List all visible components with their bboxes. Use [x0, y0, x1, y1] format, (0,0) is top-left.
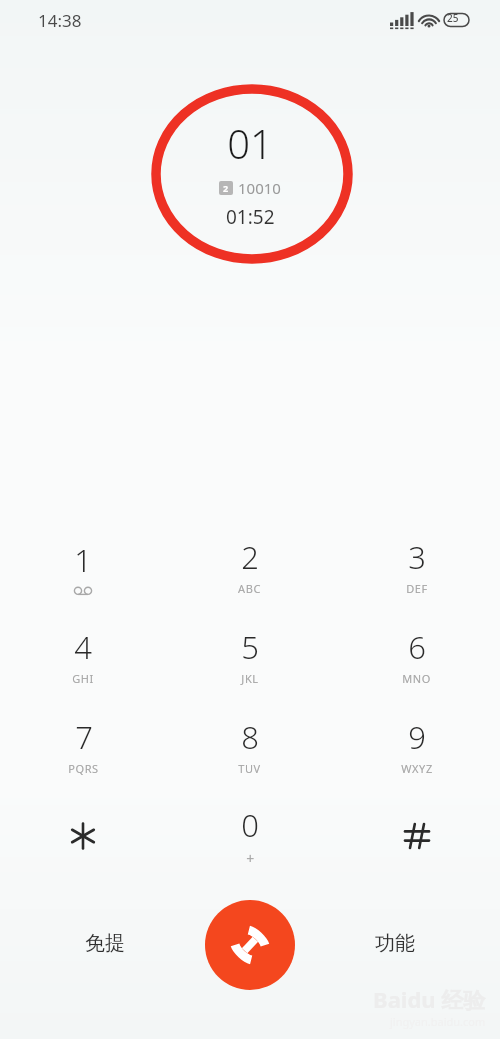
staticText: 8	[241, 716, 259, 758]
staticText: +	[246, 849, 255, 868]
staticText: PQRS	[68, 761, 99, 776]
staticText: MNO	[402, 671, 431, 686]
other: Pound	[397, 816, 437, 856]
button[interactable]: 8	[166, 701, 333, 791]
button[interactable]: 免提	[55, 912, 155, 974]
button[interactable]: 6	[333, 611, 500, 701]
button[interactable]: End call	[205, 900, 295, 990]
staticText: 14:38	[38, 9, 82, 32]
staticText: 6	[408, 626, 426, 668]
staticText: TUV	[238, 761, 261, 776]
button[interactable]: 3	[333, 521, 500, 611]
button[interactable]: 4	[0, 611, 166, 701]
button[interactable]: Pound	[333, 791, 500, 881]
button[interactable]: 1	[0, 521, 166, 611]
staticText: 25	[447, 11, 459, 25]
staticText: 01	[227, 116, 273, 170]
staticText: 4	[74, 626, 92, 668]
staticText: JKL	[241, 671, 259, 686]
staticText: 7	[75, 716, 93, 758]
staticText: 01:52	[226, 204, 275, 230]
staticText: 2	[223, 182, 229, 194]
staticText: 9	[408, 716, 426, 758]
other: Star	[63, 816, 103, 856]
button[interactable]: 5	[166, 611, 333, 701]
button[interactable]: Star	[0, 791, 166, 881]
staticText: 10010	[238, 178, 281, 198]
staticText: GHI	[72, 671, 94, 686]
staticText: 功能	[375, 931, 415, 956]
staticText: 免提	[85, 931, 125, 956]
button[interactable]: 0	[166, 791, 333, 881]
staticText: 3	[408, 536, 426, 578]
button[interactable]: 2	[166, 521, 333, 611]
staticText: ABC	[238, 581, 261, 596]
button[interactable]: 9	[333, 701, 500, 791]
staticText: 1	[74, 539, 92, 581]
staticText: DEF	[406, 581, 428, 596]
button[interactable]: 7	[0, 701, 166, 791]
staticText: Baidu 经验	[373, 984, 486, 1014]
staticText: 0	[241, 804, 259, 846]
staticText: WXYZ	[401, 761, 433, 776]
button[interactable]: 功能	[345, 912, 445, 974]
staticText: 2	[241, 536, 259, 578]
staticText: 5	[241, 626, 259, 668]
